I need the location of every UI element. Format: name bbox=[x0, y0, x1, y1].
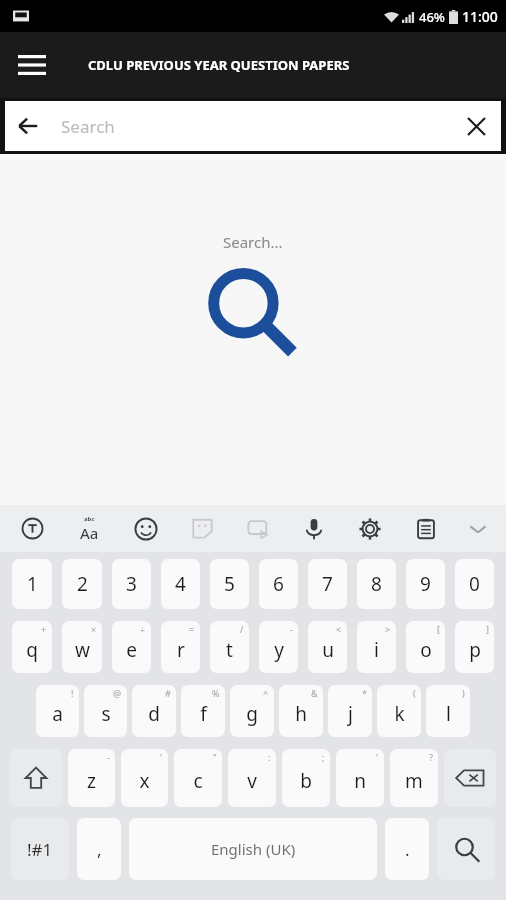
staticText: ' bbox=[160, 751, 163, 763]
staticText: . bbox=[405, 838, 410, 861]
button[interactable]: 9 bbox=[406, 559, 445, 609]
button[interactable]: Back bbox=[5, 103, 51, 149]
button[interactable]: > bbox=[357, 621, 396, 673]
button[interactable]: 3 bbox=[112, 559, 151, 609]
staticText: - bbox=[290, 623, 293, 635]
button[interactable]: Voice input bbox=[286, 505, 342, 552]
staticText: < bbox=[336, 623, 342, 635]
staticText: = bbox=[189, 623, 195, 635]
staticText: l bbox=[446, 701, 451, 727]
button[interactable]: Stickers bbox=[174, 505, 230, 552]
staticText: c bbox=[193, 768, 203, 794]
staticText: Search bbox=[61, 115, 451, 138]
button[interactable]: 1 bbox=[12, 559, 52, 609]
button[interactable]: ' bbox=[336, 749, 384, 807]
button[interactable]: ^ bbox=[230, 685, 274, 737]
button[interactable]: English (UK) bbox=[129, 818, 377, 880]
button[interactable]: Backspace bbox=[444, 749, 496, 807]
button[interactable]: ) bbox=[426, 685, 470, 737]
button[interactable]: * bbox=[328, 685, 372, 737]
button[interactable]: ( bbox=[377, 685, 421, 737]
staticText: f bbox=[200, 701, 207, 727]
button[interactable]: ' bbox=[121, 749, 168, 807]
staticText: o bbox=[420, 637, 432, 663]
button[interactable]: Clipboard bbox=[398, 505, 454, 552]
staticText: % bbox=[212, 687, 220, 699]
button[interactable]: % bbox=[181, 685, 225, 737]
staticText: d bbox=[148, 701, 160, 727]
button[interactable]: Text style rotate bbox=[4, 505, 61, 552]
button[interactable]: ! bbox=[36, 685, 79, 737]
staticText: > bbox=[385, 623, 391, 635]
button[interactable]: 0 bbox=[455, 559, 494, 609]
button[interactable]: Shift bbox=[10, 749, 62, 807]
staticText: k bbox=[394, 701, 405, 727]
staticText: 3 bbox=[126, 571, 137, 597]
button[interactable]: @ bbox=[84, 685, 127, 737]
staticText: b bbox=[300, 768, 312, 794]
button[interactable]: 2 bbox=[62, 559, 102, 609]
button[interactable]: 4 bbox=[161, 559, 200, 609]
button[interactable]: . bbox=[385, 818, 429, 880]
button[interactable]: , bbox=[77, 818, 121, 880]
staticText: 4 bbox=[175, 571, 186, 597]
button[interactable]: = bbox=[161, 621, 200, 673]
staticText: ] bbox=[486, 623, 489, 635]
staticText: !#1 bbox=[27, 838, 53, 861]
button[interactable]: & bbox=[279, 685, 323, 737]
button[interactable]: - bbox=[68, 749, 115, 807]
staticText: ( bbox=[413, 687, 416, 699]
staticText: ^ bbox=[263, 687, 269, 699]
button[interactable]: Settings bbox=[342, 505, 398, 552]
staticText: @ bbox=[113, 687, 122, 699]
staticText: + bbox=[41, 623, 47, 635]
staticText: Search... bbox=[223, 232, 283, 252]
button[interactable]: ] bbox=[455, 621, 494, 673]
button[interactable]: # bbox=[132, 685, 176, 737]
staticText: q bbox=[26, 637, 38, 663]
button[interactable]: < bbox=[308, 621, 347, 673]
button[interactable]: 8 bbox=[357, 559, 396, 609]
button[interactable]: GIF bbox=[230, 505, 286, 552]
button[interactable]: ÷ bbox=[112, 621, 151, 673]
staticText: x bbox=[139, 768, 150, 794]
staticText: 46% bbox=[419, 8, 445, 26]
button[interactable]: × bbox=[62, 621, 102, 673]
button[interactable]: 6 bbox=[259, 559, 298, 609]
button[interactable]: Open navigation menu bbox=[10, 43, 54, 87]
staticText: j bbox=[348, 701, 353, 727]
button[interactable]: [ bbox=[406, 621, 445, 673]
button[interactable]: + bbox=[12, 621, 52, 673]
button[interactable]: " bbox=[174, 749, 222, 807]
staticText: # bbox=[165, 687, 171, 699]
staticText: : bbox=[268, 751, 271, 763]
button[interactable]: 7 bbox=[308, 559, 347, 609]
staticText: ÷ bbox=[140, 623, 146, 635]
button[interactable]: ? bbox=[390, 749, 438, 807]
button[interactable]: Collapse bbox=[454, 505, 502, 552]
button[interactable]: ; bbox=[282, 749, 330, 807]
staticText: 6 bbox=[273, 571, 284, 597]
button[interactable]: / bbox=[210, 621, 249, 673]
staticText: ; bbox=[322, 751, 325, 763]
button[interactable]: !#1 bbox=[11, 818, 69, 880]
button[interactable]: Emoji bbox=[118, 505, 174, 552]
staticText: ) bbox=[462, 687, 465, 699]
staticText: 0 bbox=[469, 571, 480, 597]
button[interactable]: Back bbox=[5, 101, 501, 151]
staticText: e bbox=[126, 637, 137, 663]
staticText: 7 bbox=[322, 571, 333, 597]
staticText: 1 bbox=[27, 571, 38, 597]
staticText: Aa bbox=[80, 523, 99, 543]
button[interactable]: Font size bbox=[61, 505, 118, 552]
button[interactable]: - bbox=[259, 621, 298, 673]
button[interactable]: 5 bbox=[210, 559, 249, 609]
staticText: English (UK) bbox=[211, 839, 296, 859]
staticText: r bbox=[177, 637, 185, 663]
button[interactable]: Clear search bbox=[451, 101, 501, 151]
staticText: s bbox=[101, 701, 111, 727]
button[interactable]: Search bbox=[437, 818, 495, 880]
button[interactable]: : bbox=[228, 749, 276, 807]
staticText: 2 bbox=[77, 571, 88, 597]
staticText: - bbox=[107, 751, 110, 763]
